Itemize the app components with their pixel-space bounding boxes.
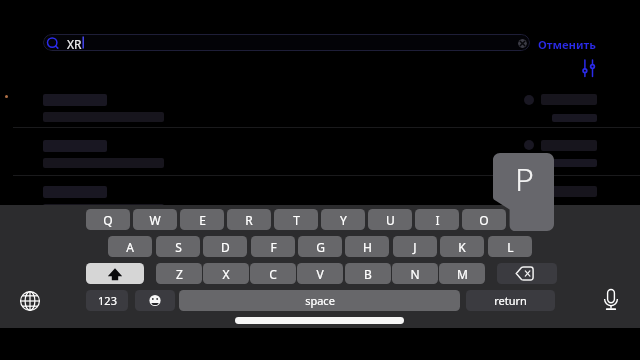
staticText: O xyxy=(479,212,489,228)
staticText: N xyxy=(410,266,420,282)
button[interactable]: X xyxy=(203,263,249,284)
staticText: Отменить xyxy=(538,37,596,52)
staticText: Q xyxy=(103,212,113,228)
button[interactable]: Shift xyxy=(86,263,144,284)
staticText: V xyxy=(316,266,324,282)
button[interactable]: N xyxy=(392,263,438,284)
button[interactable]: Q xyxy=(86,209,130,230)
button[interactable]: U xyxy=(368,209,412,230)
button[interactable]: M xyxy=(439,263,485,284)
staticText: return xyxy=(494,293,527,308)
button[interactable]: L xyxy=(488,236,532,257)
staticText: H xyxy=(363,239,372,255)
staticText: Y xyxy=(340,212,347,228)
staticText: M xyxy=(457,266,468,282)
staticText: 123 xyxy=(98,293,117,308)
staticText: F xyxy=(270,239,277,255)
staticText: R xyxy=(245,212,253,228)
button[interactable]: E xyxy=(180,209,224,230)
staticText: G xyxy=(316,239,325,255)
button[interactable]: space xyxy=(179,290,460,311)
button[interactable]: C xyxy=(250,263,296,284)
staticText: D xyxy=(221,239,230,255)
button[interactable]: V xyxy=(297,263,343,284)
staticText: L xyxy=(507,239,514,255)
staticText: J xyxy=(413,239,417,255)
button[interactable]: O xyxy=(462,209,506,230)
staticText: T xyxy=(293,212,300,228)
staticText: Z xyxy=(176,266,183,282)
button[interactable]: I xyxy=(415,209,459,230)
button[interactable]: T xyxy=(274,209,318,230)
button[interactable]: Y xyxy=(321,209,365,230)
staticText: I xyxy=(435,212,440,228)
button[interactable]: Dictate xyxy=(601,288,621,308)
button[interactable]: XR xyxy=(43,34,530,51)
button[interactable]: B xyxy=(345,263,391,284)
staticText: X xyxy=(222,266,230,282)
staticText: U xyxy=(386,212,395,228)
button[interactable]: Filters xyxy=(578,56,600,78)
button[interactable]: 123 xyxy=(86,290,128,311)
button[interactable]: F xyxy=(251,236,295,257)
staticText: P xyxy=(515,157,534,201)
staticText: XR xyxy=(67,36,82,51)
button[interactable]: G xyxy=(298,236,342,257)
button[interactable]: Backspace xyxy=(497,263,557,284)
button[interactable]: Change keyboard xyxy=(20,291,40,311)
button[interactable]: Clear text xyxy=(518,39,527,48)
button[interactable]: D xyxy=(203,236,247,257)
button[interactable]: K xyxy=(440,236,484,257)
button[interactable]: Отменить xyxy=(532,36,602,52)
button[interactable]: R xyxy=(227,209,271,230)
button[interactable]: Emoji xyxy=(135,290,175,311)
button[interactable]: H xyxy=(345,236,389,257)
staticText: B xyxy=(364,266,372,282)
button[interactable]: W xyxy=(133,209,177,230)
staticText: W xyxy=(149,212,161,228)
staticText: K xyxy=(458,239,466,255)
staticText: S xyxy=(175,239,182,255)
button[interactable]: return xyxy=(466,290,555,311)
staticText: E xyxy=(199,212,206,228)
button[interactable]: J xyxy=(393,236,437,257)
staticText: space xyxy=(305,293,335,308)
button[interactable]: S xyxy=(156,236,200,257)
staticText: C xyxy=(269,266,277,282)
button[interactable]: A xyxy=(108,236,152,257)
button[interactable]: Z xyxy=(156,263,202,284)
staticText: A xyxy=(126,239,134,255)
